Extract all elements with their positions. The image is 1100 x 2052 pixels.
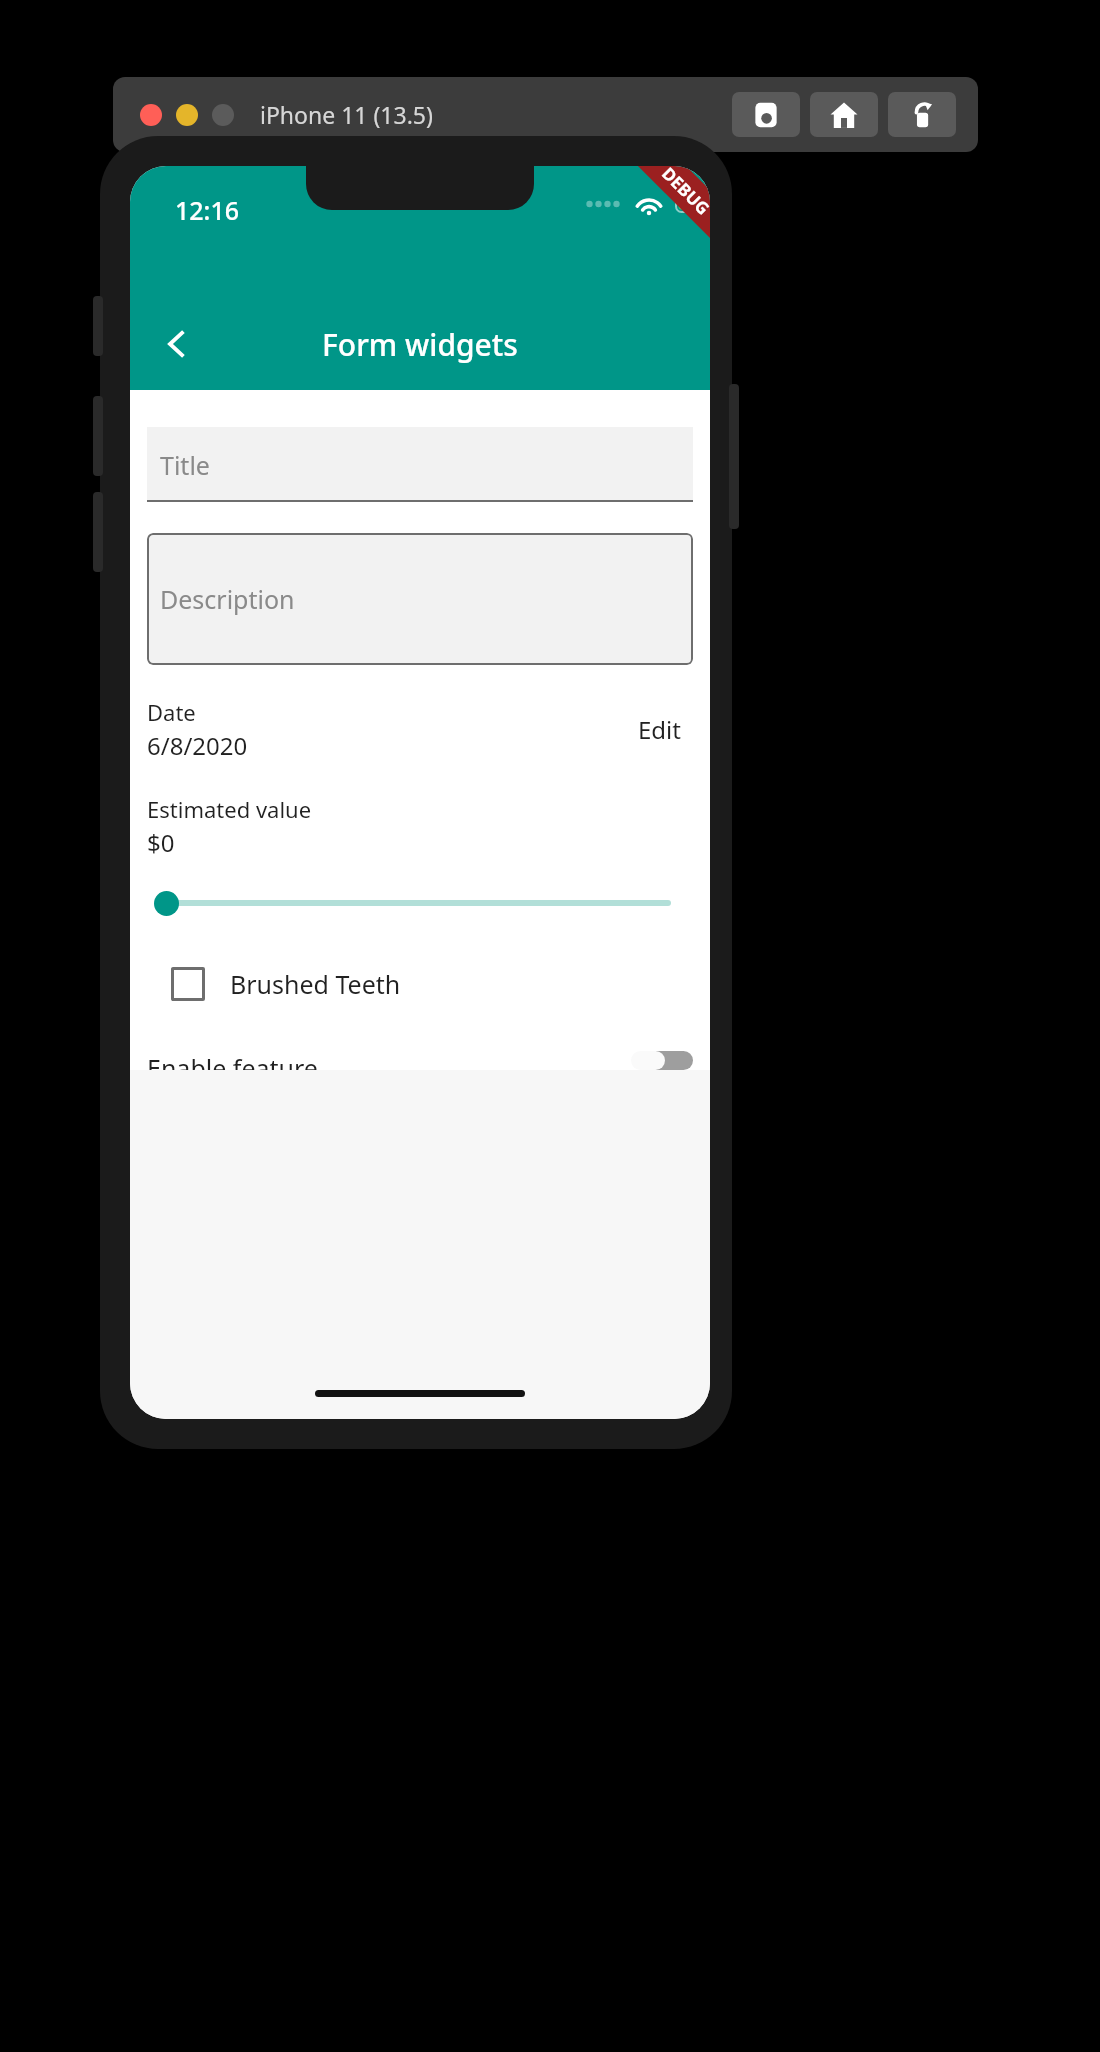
staticText: Enable feature xyxy=(147,1051,631,1070)
staticText: Description xyxy=(160,582,295,616)
staticText: DEBUG xyxy=(657,166,710,220)
button[interactable]: Back xyxy=(148,316,204,372)
staticText: 12:16 xyxy=(175,193,240,227)
button[interactable]: Enable feature xyxy=(147,1051,693,1070)
button[interactable]: Screenshot xyxy=(732,92,800,137)
button[interactable] xyxy=(140,104,162,126)
staticText: 6/8/2020 xyxy=(147,729,248,762)
button[interactable]: Edit xyxy=(626,705,693,754)
button[interactable] xyxy=(147,881,693,925)
staticText: Date xyxy=(147,697,196,727)
button[interactable]: Home xyxy=(810,92,878,137)
button[interactable]: Brushed Teeth xyxy=(147,967,693,1001)
button[interactable] xyxy=(176,104,198,126)
button[interactable] xyxy=(212,104,234,126)
staticText: Form widgets xyxy=(322,324,518,365)
staticText: Edit xyxy=(638,713,681,746)
button[interactable]: Title xyxy=(147,427,693,502)
staticText: Title xyxy=(160,448,210,482)
staticText: $0 xyxy=(147,826,175,859)
staticText: Estimated value xyxy=(147,794,312,824)
staticText: Brushed Teeth xyxy=(230,967,401,1001)
staticText: iPhone 11 (13.5) xyxy=(260,99,433,130)
button[interactable]: Share xyxy=(888,92,956,137)
button[interactable]: Description xyxy=(147,533,693,665)
